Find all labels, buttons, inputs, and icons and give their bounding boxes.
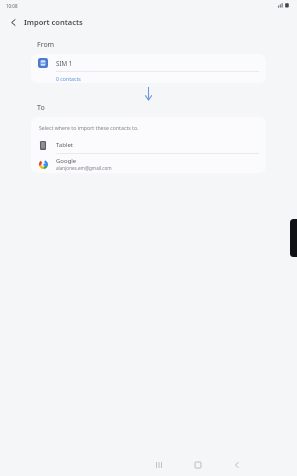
button[interactable]: Home [187, 454, 209, 476]
button[interactable]: SIM 1 [31, 54, 266, 83]
button[interactable]: Back [226, 454, 248, 476]
staticText: Google [56, 157, 77, 165]
staticText: Select where to import these contacts to… [39, 124, 139, 131]
button[interactable]: Back [4, 13, 22, 31]
staticText: 0 contacts [56, 75, 81, 82]
staticText: Import contacts [24, 17, 83, 27]
staticText: alanjones.em@gmail.com [56, 165, 112, 171]
button[interactable]: Tablet [31, 137, 266, 153]
staticText: To [37, 103, 45, 113]
button[interactable]: Recents [148, 454, 170, 476]
staticText: SIM 1 [56, 59, 73, 67]
staticText: From [37, 40, 55, 50]
button[interactable]: Edge panel handle [290, 219, 297, 257]
staticText: 10:08 [6, 3, 18, 9]
staticText: Tablet [56, 141, 74, 149]
button[interactable]: Google [31, 154, 266, 173]
